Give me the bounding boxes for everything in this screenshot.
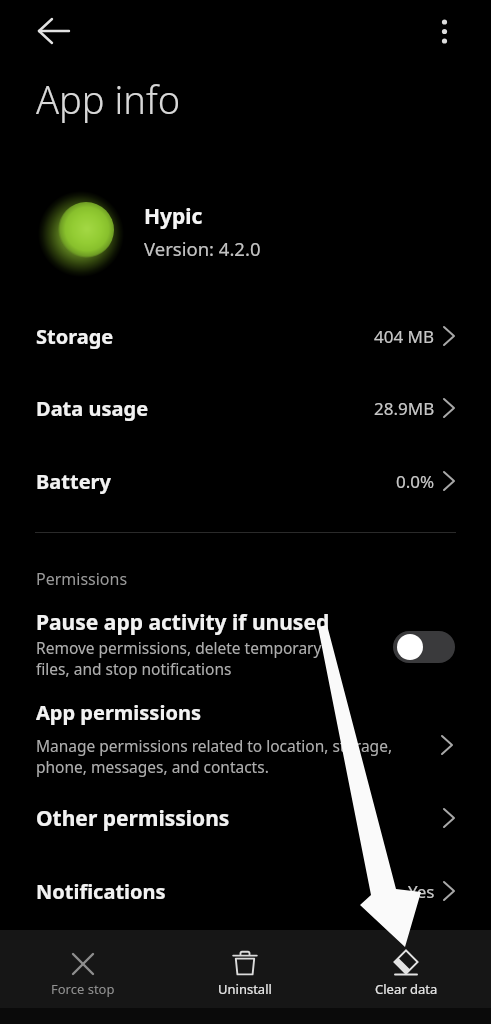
staticText: Data usage bbox=[36, 395, 149, 422]
staticText: 0.0% bbox=[396, 470, 435, 493]
button[interactable] bbox=[425, 10, 465, 54]
staticText: Storage bbox=[36, 323, 114, 350]
button[interactable]: Other permissions bbox=[0, 783, 491, 853]
button[interactable]: Force stop bbox=[23, 940, 143, 1006]
staticText: App info bbox=[36, 73, 181, 125]
staticText: Yes bbox=[408, 880, 435, 903]
button[interactable]: Uninstall bbox=[185, 940, 305, 1006]
button[interactable]: Pause app activity if unused bbox=[0, 603, 491, 688]
button[interactable]: Data usage bbox=[0, 372, 491, 444]
staticText: Other permissions bbox=[36, 804, 230, 833]
staticText: Remove permissions, delete temporary fil… bbox=[36, 637, 322, 680]
staticText: Version: 4.2.0 bbox=[144, 236, 261, 261]
staticText: Uninstall bbox=[218, 980, 272, 998]
staticText: Battery bbox=[36, 468, 111, 495]
staticText: Notifications bbox=[36, 878, 166, 905]
staticText: Pause app activity if unused bbox=[36, 608, 330, 637]
staticText: Permissions bbox=[36, 568, 128, 590]
staticText: Clear data bbox=[375, 980, 438, 998]
button[interactable]: Notifications bbox=[0, 856, 491, 926]
staticText: Manage permissions related to location, … bbox=[36, 735, 393, 778]
staticText: Hypic bbox=[144, 202, 203, 231]
staticText: 28.9MB bbox=[374, 397, 435, 420]
button[interactable] bbox=[393, 631, 455, 663]
button[interactable]: Clear data bbox=[346, 940, 466, 1006]
staticText: 404 MB bbox=[374, 325, 435, 348]
staticText: App permissions bbox=[36, 699, 201, 726]
button[interactable]: App permissions bbox=[0, 694, 491, 786]
button[interactable]: Storage bbox=[0, 300, 491, 372]
staticText: Force stop bbox=[51, 980, 115, 998]
button[interactable] bbox=[24, 13, 68, 49]
button[interactable]: Battery bbox=[0, 445, 491, 517]
